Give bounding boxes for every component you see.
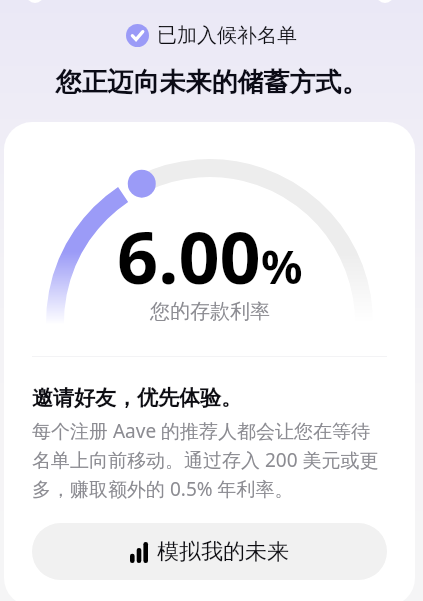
staticText: 模拟我的未来	[157, 538, 289, 566]
staticText: %	[261, 235, 303, 298]
staticText: 您的存款利率	[150, 299, 270, 324]
staticText: 6.00	[117, 207, 261, 305]
staticText: 您正迈向未来的储蓄方式。	[0, 66, 423, 99]
staticText: 邀请好友，优先体验。	[32, 385, 242, 411]
button[interactable]: Back	[26, 0, 44, 3]
staticText: 每个注册 Aave 的推荐人都会让您在等待名单上向前移动。通过存入 200 美元…	[32, 418, 387, 501]
button[interactable]: Close	[376, 0, 394, 3]
staticText: 已加入候补名单	[157, 23, 297, 48]
button[interactable]: 模拟我的未来	[32, 523, 387, 580]
